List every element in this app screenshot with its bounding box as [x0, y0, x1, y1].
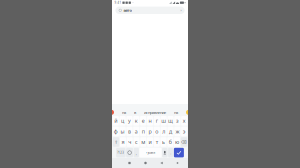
staticText: ×: [180, 8, 182, 13]
button[interactable]: Emoji: [186, 110, 191, 115]
staticText: ⇧: [114, 140, 117, 144]
button[interactable]: с: [133, 137, 140, 147]
staticText: я: [121, 138, 124, 146]
button[interactable]: Search: [174, 148, 184, 157]
staticText: ⌫: [181, 140, 187, 144]
button[interactable]: на: [122, 110, 126, 115]
button[interactable]: ?123: [116, 148, 125, 157]
button[interactable]: ш: [161, 116, 167, 126]
button[interactable]: ч: [127, 137, 133, 147]
button[interactable]: ю: [174, 137, 180, 147]
button[interactable]: Menu: [173, 158, 181, 168]
staticText: э: [183, 128, 186, 135]
staticText: е: [142, 117, 145, 124]
button[interactable]: и: [147, 137, 153, 147]
staticText: исправление: [144, 110, 166, 115]
staticText: г: [156, 117, 158, 124]
button[interactable]: г: [154, 116, 160, 126]
button[interactable]: й: [113, 116, 119, 126]
button[interactable]: э: [181, 127, 187, 136]
button[interactable]: ь: [160, 137, 167, 147]
button[interactable]: ,: [134, 148, 139, 157]
button[interactable]: Recents: [125, 158, 133, 168]
staticText: 9:41: [115, 1, 122, 4]
button[interactable]: исправление: [144, 110, 166, 115]
staticText: к: [135, 117, 138, 124]
button[interactable]: п: [140, 127, 146, 136]
button[interactable]: у: [126, 116, 132, 126]
staticText: ?123: [117, 151, 124, 154]
button[interactable]: я: [120, 137, 126, 147]
staticText: .: [170, 150, 171, 155]
staticText: ж: [175, 128, 179, 135]
staticText: ц: [121, 117, 124, 124]
button[interactable]: ц: [119, 116, 126, 126]
staticText: д: [169, 128, 172, 135]
button[interactable]: з: [174, 116, 180, 126]
button[interactable]: щ: [167, 116, 174, 126]
button[interactable]: е: [140, 116, 146, 126]
staticText: т: [156, 138, 158, 146]
button[interactable]: в: [126, 127, 132, 136]
staticText: щ: [168, 117, 173, 124]
staticText: ··: [132, 0, 134, 5]
button[interactable]: в: [134, 110, 136, 115]
button[interactable]: Voice input: [162, 148, 167, 157]
button[interactable]: ы: [119, 127, 126, 136]
button[interactable]: б: [167, 137, 173, 147]
button[interactable]: т: [154, 137, 160, 147]
button[interactable]: н: [147, 116, 153, 126]
button[interactable]: о: [154, 127, 160, 136]
staticText: й: [114, 117, 117, 124]
staticText: у: [128, 117, 131, 124]
button[interactable]: Switch language: [126, 148, 133, 157]
button[interactable]: а: [133, 127, 139, 136]
staticText: п: [142, 128, 145, 135]
staticText: Русский: [145, 151, 155, 154]
staticText: н: [148, 117, 151, 124]
button[interactable]: м: [140, 137, 146, 147]
button[interactable]: х: [181, 116, 187, 126]
staticText: ь: [162, 138, 165, 146]
button[interactable]: Home: [141, 158, 149, 168]
staticText: б: [169, 138, 172, 146]
staticText: л: [162, 128, 165, 135]
button[interactable]: авто: [112, 5, 188, 16]
staticText: ш: [161, 117, 166, 124]
staticText: на: [122, 110, 126, 115]
button[interactable]: Back: [157, 158, 165, 168]
button[interactable]: р: [147, 127, 153, 136]
staticText: с: [135, 138, 138, 146]
staticText: ф: [114, 128, 118, 135]
staticText: ы: [121, 128, 125, 135]
button[interactable]: Русский: [139, 148, 161, 157]
staticText: на: [174, 110, 178, 115]
button[interactable]: к: [133, 116, 139, 126]
button[interactable]: ж: [174, 127, 180, 136]
staticText: м: [141, 138, 145, 146]
staticText: ч: [128, 138, 131, 146]
staticText: ,: [136, 150, 137, 155]
button[interactable]: на: [174, 110, 178, 115]
button[interactable]: Assistant: [109, 110, 114, 115]
staticText: х: [183, 117, 186, 124]
button[interactable]: д: [167, 127, 174, 136]
button[interactable]: л: [161, 127, 167, 136]
staticText: авто: [123, 8, 131, 13]
staticText: в: [128, 128, 131, 135]
staticText: р: [148, 128, 151, 135]
button[interactable]: ⇧: [113, 137, 119, 147]
staticText: о: [155, 128, 158, 135]
staticText: в: [134, 110, 136, 115]
staticText: а: [135, 128, 138, 135]
staticText: и: [148, 138, 151, 146]
button[interactable]: ф: [113, 127, 119, 136]
staticText: ю: [175, 138, 179, 146]
staticText: з: [176, 117, 179, 124]
button[interactable]: ⌫: [181, 137, 187, 147]
